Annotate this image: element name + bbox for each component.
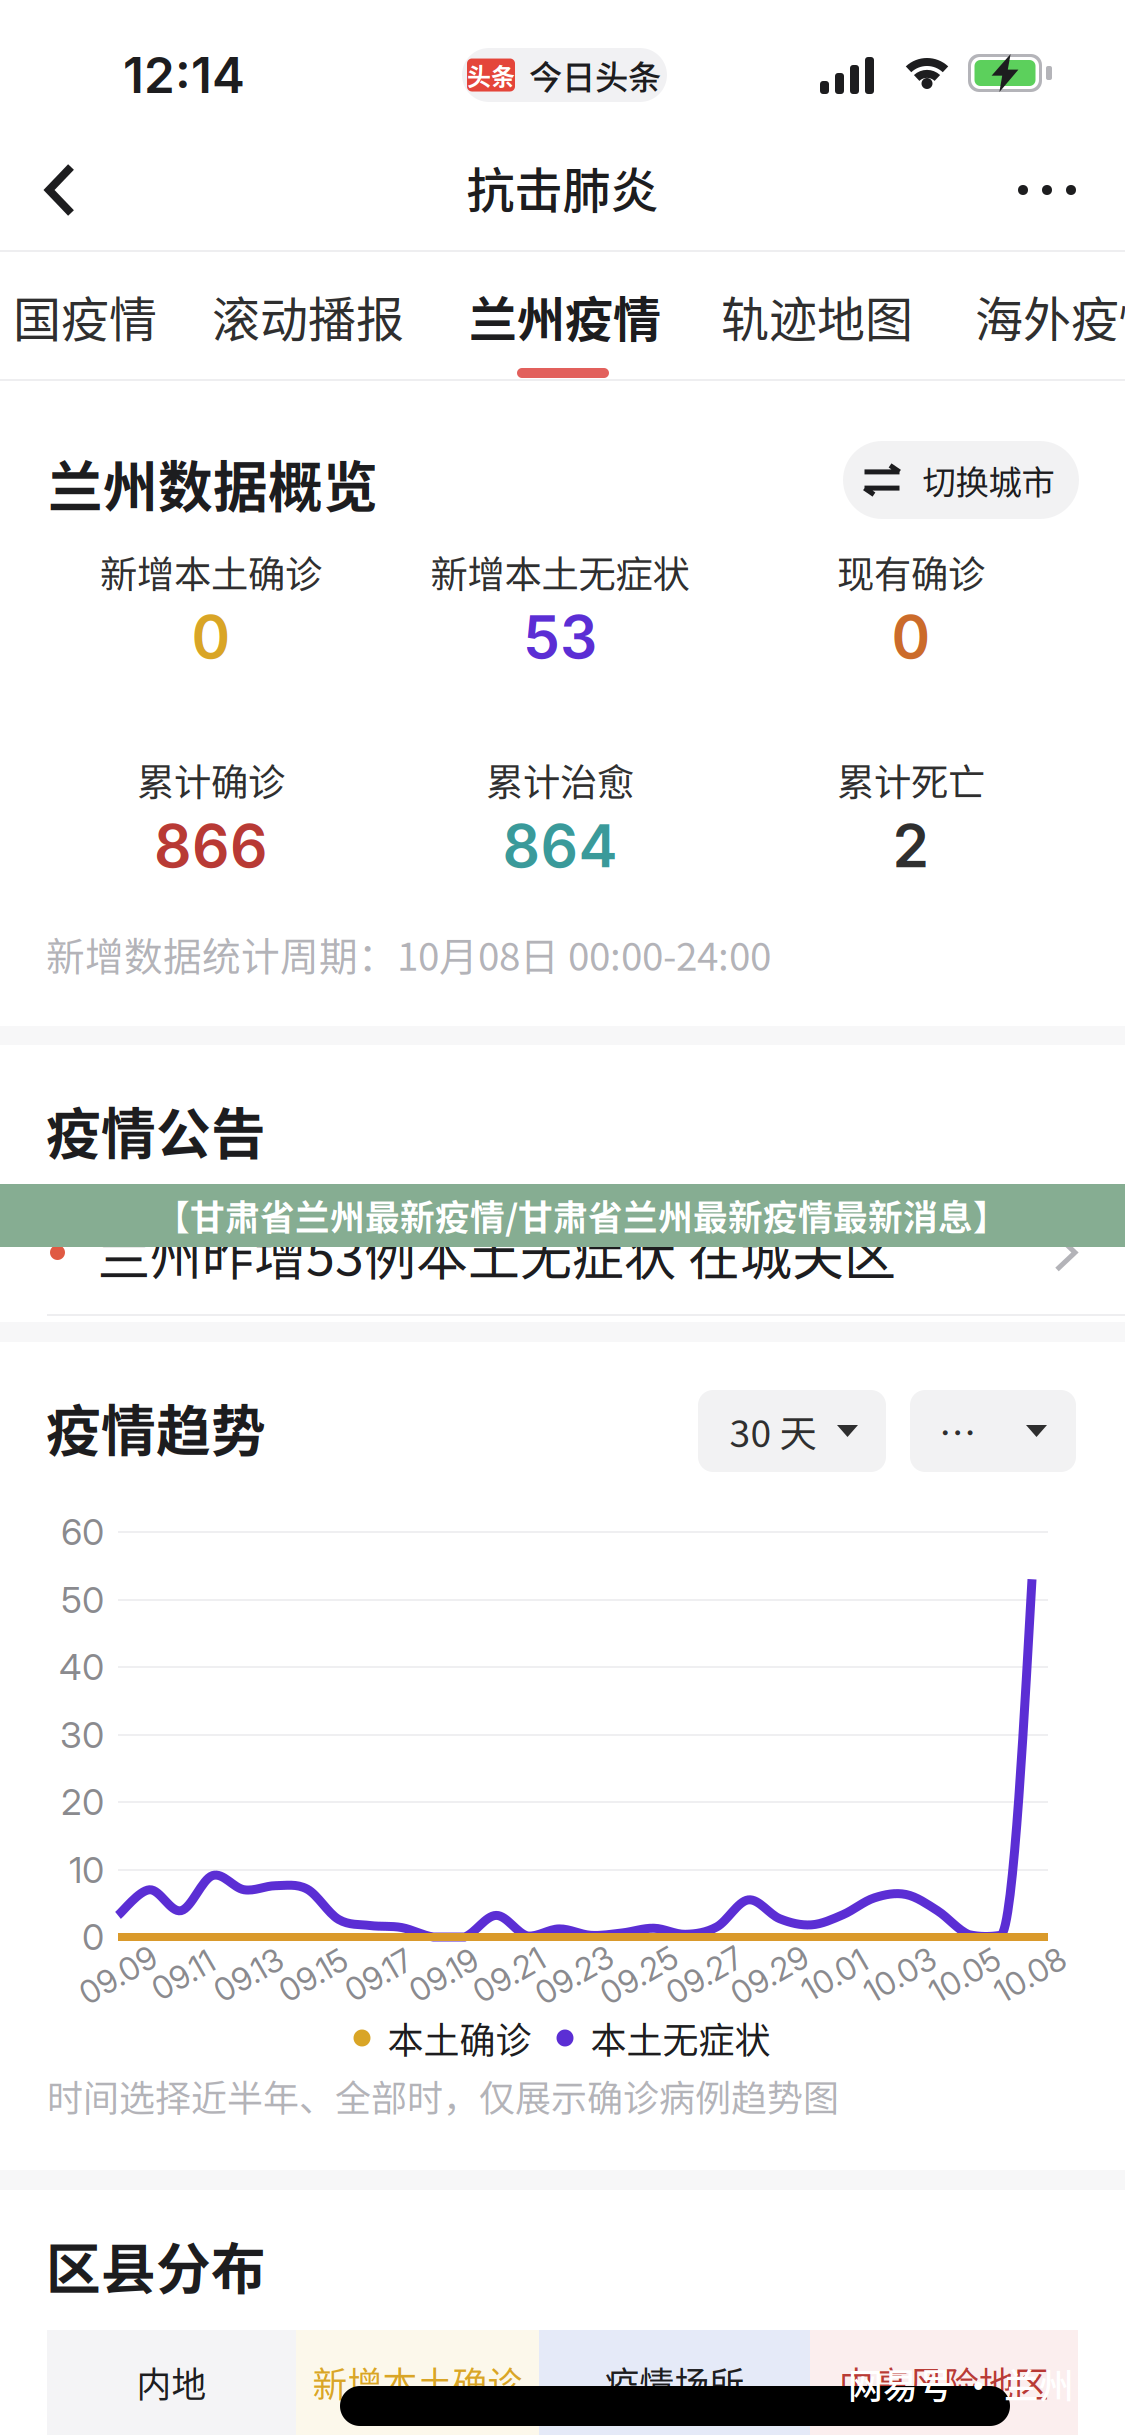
staticText: 09.25 — [597, 1956, 681, 1994]
staticText: 累计确诊 — [137, 753, 285, 807]
staticText: 新增本土确诊 — [100, 545, 322, 599]
staticText: 0 — [191, 601, 230, 672]
staticText: 今日头条 — [529, 51, 661, 99]
staticText: 10 — [69, 1848, 104, 1892]
staticText: 10.05 — [926, 1956, 1003, 1994]
staticText: 轨迹地图 — [721, 281, 913, 351]
staticText: 新增本土无症状 — [430, 545, 689, 599]
staticText: 本土确诊 — [387, 2012, 531, 2064]
staticText: 10.01 — [800, 1956, 870, 1994]
button[interactable]: 兰州昨增53例本土无症状 在城关区 — [0, 1190, 1125, 1315]
staticText: 40 — [59, 1645, 104, 1689]
staticText: 20 — [61, 1780, 104, 1824]
staticText: 内地 — [136, 2357, 206, 2408]
staticText: 网易号 • 兰州 蘭 — [848, 2359, 1117, 2409]
staticText: 50 — [61, 1578, 104, 1622]
staticText: 疫情趋势 — [46, 1387, 266, 1467]
staticText: 0 — [82, 1915, 104, 1959]
staticText: 兰州昨增53例本土无症状 在城关区 — [98, 1215, 896, 1290]
staticText: 866 — [154, 810, 268, 881]
button[interactable]: Back — [8, 139, 112, 241]
staticText: 30 天 — [729, 1404, 816, 1458]
staticText: 疫情场所 — [604, 2357, 744, 2408]
staticText: 09.23 — [532, 1956, 616, 1994]
staticText: 09.17 — [343, 1956, 415, 1994]
staticText: 2 — [892, 810, 929, 881]
staticText: 中高风险地区 — [839, 2357, 1049, 2408]
staticText: 09.15 — [276, 1956, 350, 1994]
staticText: 滚动播报 — [212, 281, 404, 351]
staticText: 累计治愈 — [486, 753, 634, 807]
button[interactable]: 切换城市 — [843, 441, 1079, 519]
staticText: 12:14 — [123, 45, 245, 105]
staticText: 切换城市 — [922, 456, 1054, 504]
button[interactable]: 新增 — [910, 1390, 1076, 1472]
button[interactable]: 滚动播报 — [193, 262, 423, 370]
button[interactable]: 轨迹地图 — [702, 262, 932, 370]
staticText: 新增本土确诊 — [312, 2357, 522, 2408]
staticText: 抗击肺炎 — [466, 152, 658, 222]
button[interactable]: 30 天 — [698, 1390, 886, 1472]
staticText: 30 — [60, 1713, 104, 1757]
staticText: 09.29 — [727, 1956, 811, 1994]
staticText: 海外疫情 — [975, 281, 1125, 351]
staticText: 09.11 — [150, 1956, 217, 1994]
staticText: 53 — [523, 601, 597, 672]
staticText: 09.13 — [211, 1956, 285, 1994]
button[interactable]: More options — [995, 139, 1099, 241]
staticText: 新增 — [939, 1404, 1009, 1458]
staticText: 区县分布 — [46, 2225, 266, 2305]
staticText: 国疫情 — [13, 281, 157, 351]
staticText: 现有确诊 — [837, 545, 985, 599]
staticText: 09.27 — [663, 1956, 745, 1994]
staticText: 10.08 — [991, 1956, 1068, 1994]
staticText: 【甘肃省兰州最新疫情/甘肃省兰州最新疫情最新消息】 — [155, 1190, 1008, 1241]
staticText: 头条 — [467, 58, 515, 92]
staticText: 09.09 — [76, 1956, 160, 1994]
staticText: 864 — [502, 810, 617, 881]
staticText: 09.21 — [470, 1956, 547, 1994]
staticText: 时间选择近半年、全部时，仅展示确诊病例趋势图 — [47, 2070, 839, 2122]
button[interactable]: 兰州疫情 — [450, 262, 680, 370]
staticText: 本土无症状 — [590, 2012, 770, 2064]
staticText: 新增数据统计周期：10月08日 00:00-24:00 — [46, 926, 771, 982]
staticText: 疫情公告 — [46, 1090, 266, 1170]
staticText: 兰州数据概览 — [48, 443, 378, 523]
staticText: 10.03 — [861, 1956, 938, 1994]
staticText: 60 — [61, 1510, 104, 1554]
staticText: 09.19 — [407, 1956, 481, 1994]
staticText: 0 — [891, 601, 930, 672]
staticText: 累计死亡 — [837, 753, 985, 807]
staticText: 兰州疫情 — [469, 281, 661, 351]
